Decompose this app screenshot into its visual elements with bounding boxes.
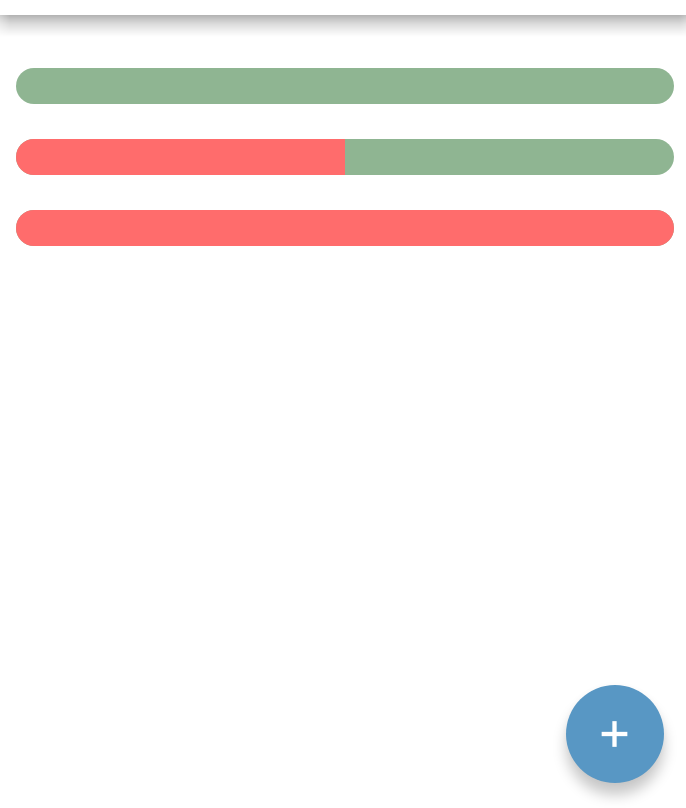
button[interactable]: Task B progress 50 percent bbox=[16, 139, 674, 175]
button[interactable]: Task A progress 0 percent bbox=[16, 68, 674, 104]
button[interactable]: Task C progress 100 percent bbox=[16, 210, 674, 246]
button[interactable]: Add bbox=[566, 685, 664, 783]
